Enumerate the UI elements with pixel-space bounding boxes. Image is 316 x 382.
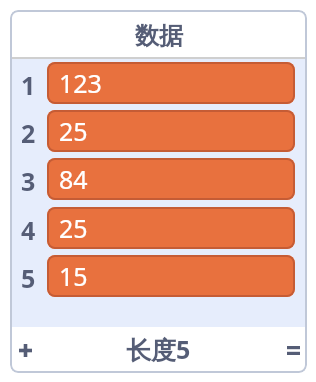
- button[interactable]: 数据: [10, 10, 307, 57]
- button[interactable]: 2: [10, 110, 307, 152]
- staticText: 84: [59, 162, 88, 196]
- staticText: 25: [59, 211, 88, 245]
- button[interactable]: Add item: [10, 327, 41, 373]
- staticText: 15: [59, 259, 88, 293]
- staticText: 1: [21, 68, 36, 102]
- staticText: 25: [59, 114, 88, 148]
- staticText: 123: [59, 66, 102, 100]
- staticText: 5: [21, 261, 36, 295]
- button[interactable]: 1: [10, 62, 307, 104]
- staticText: 数据: [135, 21, 183, 51]
- button[interactable]: Equals: [276, 327, 307, 373]
- staticText: 2: [21, 116, 36, 150]
- button[interactable]: 4: [10, 207, 307, 249]
- staticText: 3: [21, 164, 36, 198]
- staticText: 长度5: [126, 332, 191, 366]
- button[interactable]: 5: [10, 255, 307, 297]
- button[interactable]: 3: [10, 158, 307, 200]
- staticText: 4: [21, 213, 36, 247]
- button[interactable]: 长度5: [41, 327, 276, 373]
